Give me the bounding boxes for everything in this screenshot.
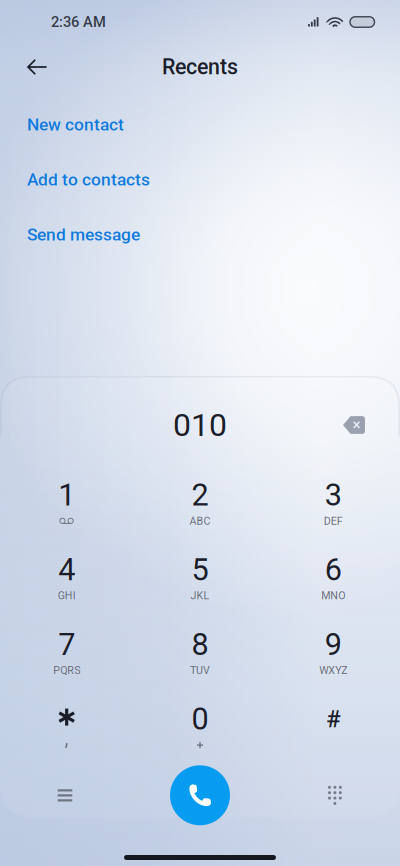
button[interactable]: 5 — [133, 549, 267, 623]
staticText: New contact — [27, 114, 124, 135]
button[interactable]: 8 — [133, 623, 267, 698]
staticText: DEF — [324, 515, 343, 527]
staticText: 2:36 AM — [51, 13, 106, 31]
button[interactable]: 2 — [133, 474, 267, 549]
staticText: 2 — [191, 477, 208, 513]
staticText: 1 — [58, 477, 75, 513]
staticText: 5 — [191, 552, 208, 588]
button[interactable]: 0 — [133, 698, 267, 773]
staticText: Add to contacts — [27, 169, 150, 190]
button[interactable]: 4 — [0, 549, 133, 623]
staticText: 4 — [58, 552, 75, 588]
staticText: PQRS — [53, 664, 80, 677]
button[interactable]: 3 — [267, 474, 400, 549]
staticText: GHI — [58, 589, 76, 602]
staticText: MNO — [321, 589, 345, 602]
staticText: 3 — [325, 477, 342, 513]
staticText: TUV — [190, 664, 210, 677]
staticText: 8 — [191, 626, 208, 662]
staticText: 010 — [173, 406, 227, 444]
button[interactable] — [0, 698, 133, 773]
staticText: 9 — [325, 626, 342, 662]
button[interactable]: Add to contacts — [0, 152, 400, 207]
staticText: 0 — [191, 701, 208, 737]
button[interactable]: 1 — [0, 474, 133, 549]
staticText: ABC — [189, 515, 210, 527]
button[interactable]: Delete — [331, 402, 377, 448]
button[interactable]: 9 — [267, 623, 400, 698]
button[interactable]: Keypad — [300, 765, 370, 825]
button[interactable]: Call — [165, 765, 235, 825]
button[interactable]: # — [267, 698, 400, 773]
button[interactable]: 6 — [267, 549, 400, 623]
button[interactable]: 7 — [0, 623, 133, 698]
staticText: WXYZ — [319, 664, 347, 677]
staticText: # — [326, 705, 340, 733]
staticText: 7 — [58, 626, 75, 662]
staticText: JKL — [190, 589, 209, 602]
button[interactable]: Back — [15, 45, 59, 89]
staticText: Send message — [27, 224, 140, 245]
staticText: 6 — [325, 552, 342, 588]
button[interactable]: Call log — [30, 765, 100, 825]
staticText: Recents — [162, 54, 238, 79]
button[interactable]: Send message — [0, 207, 400, 262]
button[interactable]: New contact — [0, 97, 400, 152]
